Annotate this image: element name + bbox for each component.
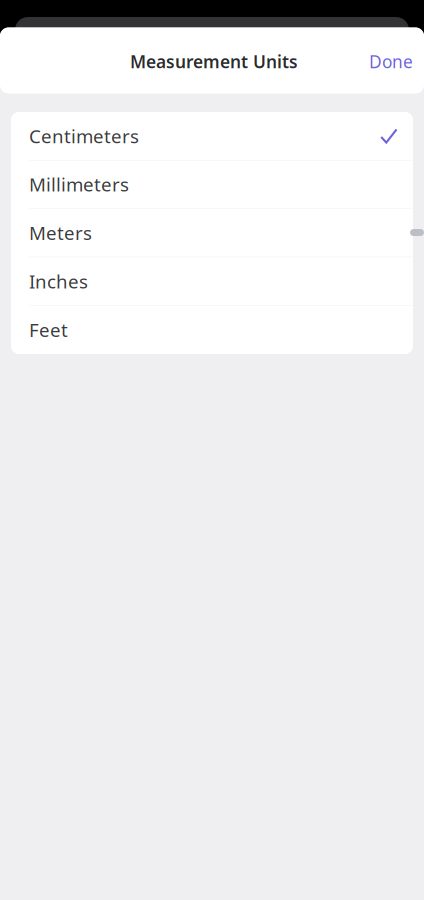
- staticText: Done: [369, 50, 413, 73]
- button[interactable]: Millimeters: [11, 160, 413, 209]
- staticText: Measurement Units: [130, 50, 298, 73]
- button[interactable]: Centimeters: [11, 112, 413, 160]
- staticText: Meters: [29, 220, 92, 245]
- staticText: Inches: [29, 269, 88, 294]
- button[interactable]: Feet: [11, 306, 413, 354]
- button[interactable]: Done: [358, 37, 424, 84]
- staticText: Centimeters: [29, 124, 139, 148]
- staticText: Millimeters: [29, 172, 129, 197]
- staticText: Feet: [29, 317, 68, 342]
- button[interactable]: Inches: [11, 257, 413, 306]
- button[interactable]: Meters: [11, 209, 413, 257]
